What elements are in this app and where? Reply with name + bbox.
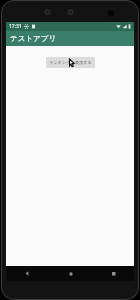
button[interactable]: ランキングを表示する <box>49 60 92 65</box>
staticText: 17:31 <box>9 23 22 30</box>
staticText: テストアプリ <box>10 34 57 43</box>
button[interactable]: Recent apps <box>107 267 120 280</box>
staticText: ランキングを表示する <box>49 60 92 65</box>
button[interactable]: Back <box>20 267 33 280</box>
button[interactable]: Home <box>64 267 77 280</box>
